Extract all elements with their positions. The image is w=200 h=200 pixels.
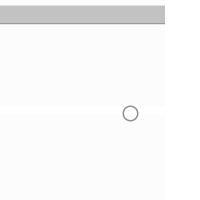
button[interactable] bbox=[0, 106, 165, 115]
